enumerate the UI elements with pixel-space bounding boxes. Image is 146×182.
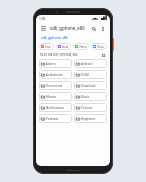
staticText: Ringtones bbox=[81, 117, 96, 121]
staticText: sdk_gphone_x86 bbox=[50, 25, 89, 31]
button[interactable]: Ringtones bbox=[74, 114, 107, 123]
button[interactable]: Open navigation menu bbox=[39, 24, 48, 33]
staticText: Notifications bbox=[46, 106, 64, 110]
staticText: Podcasts bbox=[46, 117, 59, 121]
staticText: Documents bbox=[46, 84, 63, 88]
staticText: Images bbox=[45, 45, 52, 49]
button[interactable]: Alarms bbox=[39, 59, 72, 68]
staticText: Music bbox=[81, 95, 90, 99]
staticText: 1:05 bbox=[39, 17, 46, 21]
staticText: FILES ON SDK_GPHONE_X86 bbox=[40, 53, 78, 57]
button[interactable]: DCIM bbox=[74, 70, 107, 79]
button[interactable]: Audio bbox=[56, 43, 71, 50]
staticText: Videos bbox=[79, 45, 87, 49]
button[interactable]: Pictures bbox=[74, 103, 107, 112]
button[interactable]: Movies bbox=[39, 92, 72, 101]
button[interactable]: Music bbox=[74, 92, 107, 101]
button[interactable]: Podcasts bbox=[39, 114, 72, 123]
staticText: Docum bbox=[97, 45, 105, 49]
staticText: DCIM bbox=[81, 73, 89, 77]
button[interactable]: Switch to grid view bbox=[100, 52, 106, 58]
button[interactable]: Audiobooks bbox=[39, 70, 72, 79]
button[interactable]: Videos bbox=[73, 43, 89, 50]
button[interactable]: Documents bbox=[39, 81, 72, 90]
button[interactable]: Android bbox=[74, 59, 107, 68]
button[interactable]: Notifications bbox=[39, 103, 72, 112]
button[interactable]: sdk_gphone_x86 bbox=[40, 34, 69, 41]
staticText: Alarms bbox=[46, 62, 56, 66]
button[interactable]: Search bbox=[89, 24, 98, 33]
button[interactable]: Images bbox=[39, 43, 54, 50]
staticText: sdk_gphone_x86 bbox=[41, 35, 68, 40]
staticText: Pictures bbox=[81, 106, 93, 110]
staticText: Audiobooks bbox=[46, 73, 63, 77]
staticText: Android bbox=[81, 62, 93, 66]
staticText: Movies bbox=[46, 95, 56, 99]
staticText: Download bbox=[81, 84, 96, 88]
staticText: Audio bbox=[62, 45, 69, 49]
button[interactable]: Download bbox=[74, 81, 107, 90]
button[interactable]: Docum bbox=[91, 43, 107, 50]
button[interactable]: More options bbox=[98, 24, 107, 33]
